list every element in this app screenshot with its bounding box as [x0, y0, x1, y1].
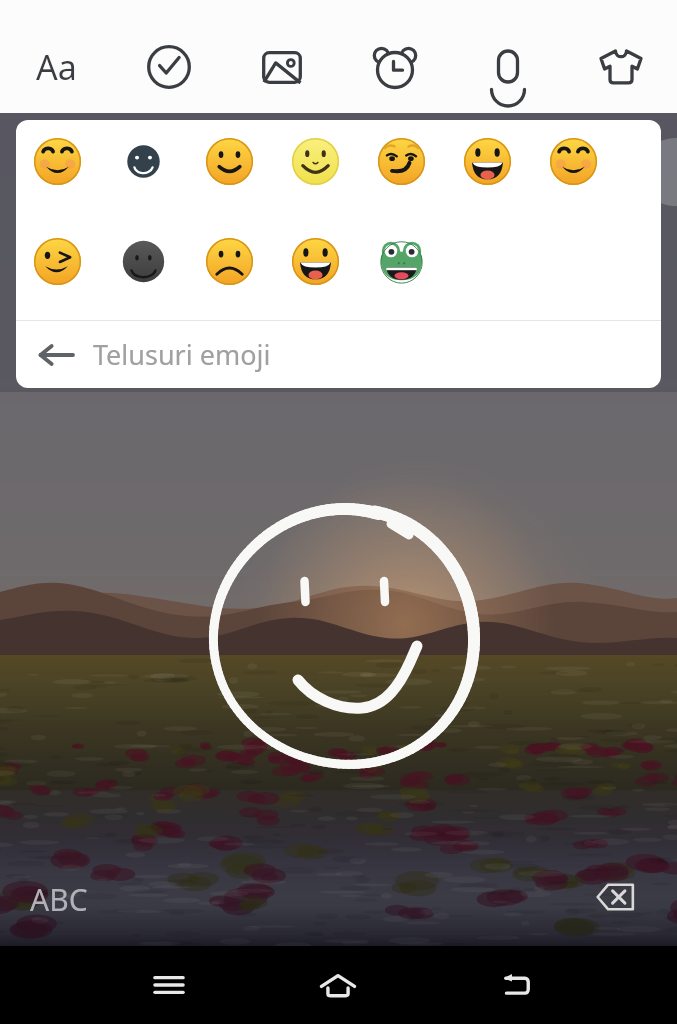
- button[interactable]: Back: [491, 946, 541, 1024]
- button[interactable]: Frog: [358, 202, 444, 320]
- button[interactable]: Slight smile: [186, 120, 272, 202]
- button[interactable]: Voice input: [451, 21, 564, 113]
- button[interactable]: Recent apps: [144, 946, 194, 1024]
- button[interactable]: Telusuri emoji: [16, 321, 661, 388]
- button[interactable]: Alarm: [338, 21, 451, 113]
- button[interactable]: Grinning: [272, 202, 358, 320]
- staticText: Aa: [36, 44, 77, 90]
- button[interactable]: Full moon face: [272, 120, 358, 202]
- button[interactable]: Backspace: [595, 875, 639, 919]
- button[interactable]: Text style: [0, 21, 112, 113]
- button[interactable]: Blushing smile: [16, 120, 100, 202]
- button[interactable]: ABC: [30, 879, 88, 920]
- button[interactable]: Wink: [16, 202, 100, 320]
- button[interactable]: Shirt: [564, 21, 677, 113]
- button[interactable]: Frowning: [186, 202, 272, 320]
- button[interactable]: Smirk: [358, 120, 444, 202]
- button[interactable]: Stickers: [112, 21, 225, 113]
- button[interactable]: Home: [313, 946, 363, 1024]
- button[interactable]: Grinning: [444, 120, 530, 202]
- staticText: Telusuri emoji: [93, 336, 271, 373]
- button[interactable]: Emoji category: [100, 120, 186, 202]
- button[interactable]: Photos: [225, 21, 338, 113]
- button[interactable]: Smiling: [530, 120, 616, 202]
- button[interactable]: New moon face: [100, 202, 186, 320]
